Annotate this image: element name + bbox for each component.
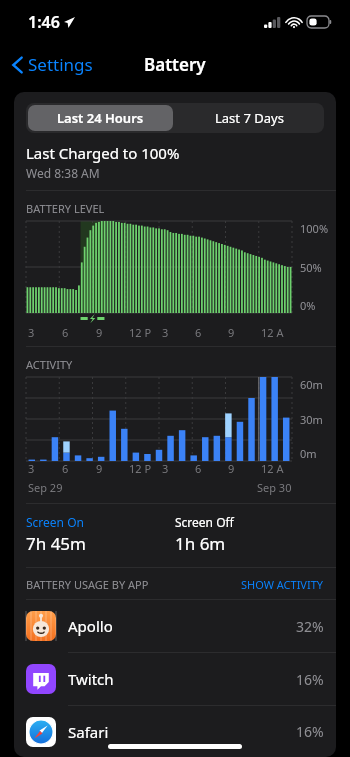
staticText: 60m [300,377,323,392]
staticText: Safari [68,722,109,742]
staticText: 6 [62,461,69,476]
staticText: 1:46 [28,11,60,33]
staticText: 30m [300,412,323,427]
staticText: 0m [300,446,317,461]
staticText: Twitch [68,669,114,689]
button[interactable]: Safari [14,706,336,757]
staticText: 50% [300,260,322,275]
staticText: Last Charged to 100% [26,143,180,163]
staticText: Sep 30 [257,480,292,495]
staticText: 3 [28,325,35,340]
staticText: 32% [296,617,324,636]
staticText: 9 [228,461,235,476]
button[interactable]: Twitch [14,653,336,705]
button[interactable]: Settings [8,49,97,80]
staticText: 16% [296,670,324,689]
staticText: Screen Off [175,514,234,530]
button[interactable]: Last 24 Hours [28,105,173,131]
staticText: Battery [144,53,206,76]
staticText: Last 7 Days [215,109,284,127]
button[interactable]: SHOW ACTIVITY [241,577,324,592]
staticText: 0% [300,298,316,313]
staticText: 16% [296,722,324,741]
staticText: Last 24 Hours [57,109,144,127]
staticText: 6 [195,325,202,340]
staticText: SHOW ACTIVITY [241,577,324,592]
staticText: 12 P [129,325,152,340]
staticText: 3 [162,461,169,476]
staticText: 100% [300,221,329,236]
staticText: 9 [96,461,103,476]
staticText: 7h 45m [26,532,86,555]
staticText: Settings [28,53,93,76]
staticText: 9 [228,325,235,340]
staticText: 12 A [261,461,284,476]
staticText: 6 [195,461,202,476]
staticText: BATTERY LEVEL [26,201,105,216]
button[interactable]: Apollo [14,600,336,652]
staticText: ACTIVITY [26,357,73,372]
staticText: 6 [62,325,69,340]
staticText: Sep 29 [28,480,63,495]
staticText: Screen On [26,514,84,530]
staticText: 9 [96,325,103,340]
staticText: 12 A [261,325,284,340]
staticText: 3 [28,461,35,476]
staticText: Apollo [68,616,113,636]
staticText: BATTERY USAGE BY APP [26,577,149,592]
staticText: 1h 6m [175,532,226,555]
staticText: Wed 8:38 AM [26,165,100,181]
button[interactable]: Last 7 Days [175,103,324,133]
staticText: 12 P [129,461,152,476]
staticText: 3 [162,325,169,340]
